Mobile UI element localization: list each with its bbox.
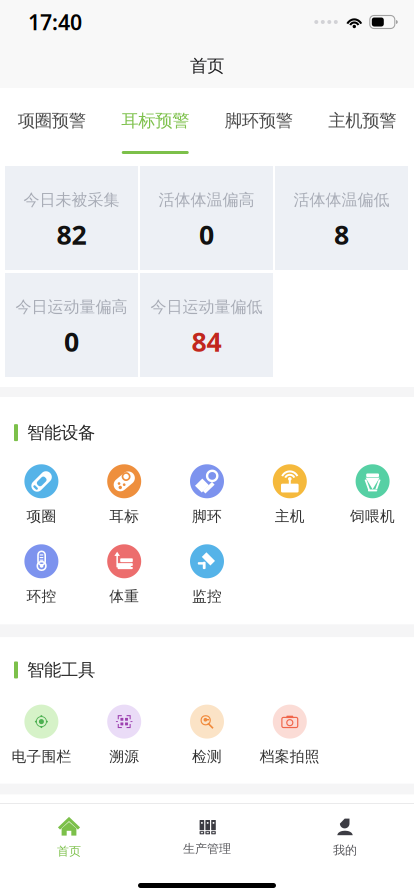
button[interactable]: 生产管理 [138,806,276,858]
staticText: 环控 [26,587,56,605]
staticText: 我的 [333,843,357,858]
button[interactable]: 脚环 [166,464,248,525]
button[interactable]: 今日未被采集 [5,166,138,270]
staticText: 0 [199,217,214,252]
staticText: 84 [191,324,221,359]
staticText: 首页 [57,844,81,859]
staticText: 今日运动量偏低 [150,297,262,317]
staticText: 饲喂机 [350,507,395,525]
button[interactable]: 今日运动量偏低 [140,273,273,377]
staticText: 项圈预警 [18,110,86,131]
staticText: 智能设备 [27,422,95,443]
staticText: 脚环预警 [225,110,293,131]
button[interactable]: 活体体温偏高 [140,166,273,270]
button[interactable]: 检测 [166,705,248,766]
staticText: 智能工具 [27,659,95,681]
button[interactable]: 耳标预警 [103,88,207,154]
button[interactable]: 监控 [166,544,248,605]
staticText: 今日运动量偏高 [15,297,127,317]
button[interactable]: 饲喂机 [331,464,414,525]
staticText: 主机 [275,507,305,525]
button[interactable]: 项圈 [0,464,83,525]
button[interactable]: 我的 [276,805,414,860]
button[interactable]: 首页 [0,804,138,861]
staticText: 生产管理 [183,841,231,856]
staticText: 溯源 [109,748,139,766]
staticText: 监控 [192,587,222,605]
staticText: 17:40 [28,8,82,36]
staticText: 8 [334,217,349,252]
button[interactable]: 活体体温偏低 [275,166,408,270]
button[interactable]: 环控 [0,544,83,605]
staticText: 耳标 [109,507,139,525]
staticText: 活体体温偏高 [158,190,254,210]
staticText: 档案拍照 [260,748,320,766]
button[interactable]: 脚环预警 [207,88,310,154]
button[interactable]: 溯源 [83,705,166,766]
staticText: 主机预警 [328,110,396,131]
button[interactable]: 档案拍照 [248,705,331,766]
button[interactable]: 主机 [248,464,331,525]
staticText: 82 [56,217,86,252]
staticText: 体重 [109,587,139,605]
button[interactable]: 主机预警 [310,88,414,154]
staticText: 0 [64,324,79,359]
staticText: 今日未被采集 [23,190,119,210]
button[interactable]: 体重 [83,544,166,605]
staticText: 脚环 [192,507,222,525]
staticText: 项圈 [26,507,56,525]
staticText: 耳标预警 [121,110,189,131]
staticText: 检测 [192,748,222,766]
staticText: 活体体温偏低 [293,190,389,210]
button[interactable]: 今日运动量偏高 [5,273,138,377]
button[interactable]: 电子围栏 [0,705,83,766]
staticText: 电子围栏 [11,748,71,766]
staticText: 首页 [190,55,224,77]
button[interactable]: 项圈预警 [0,88,103,154]
button[interactable]: 耳标 [83,464,166,525]
